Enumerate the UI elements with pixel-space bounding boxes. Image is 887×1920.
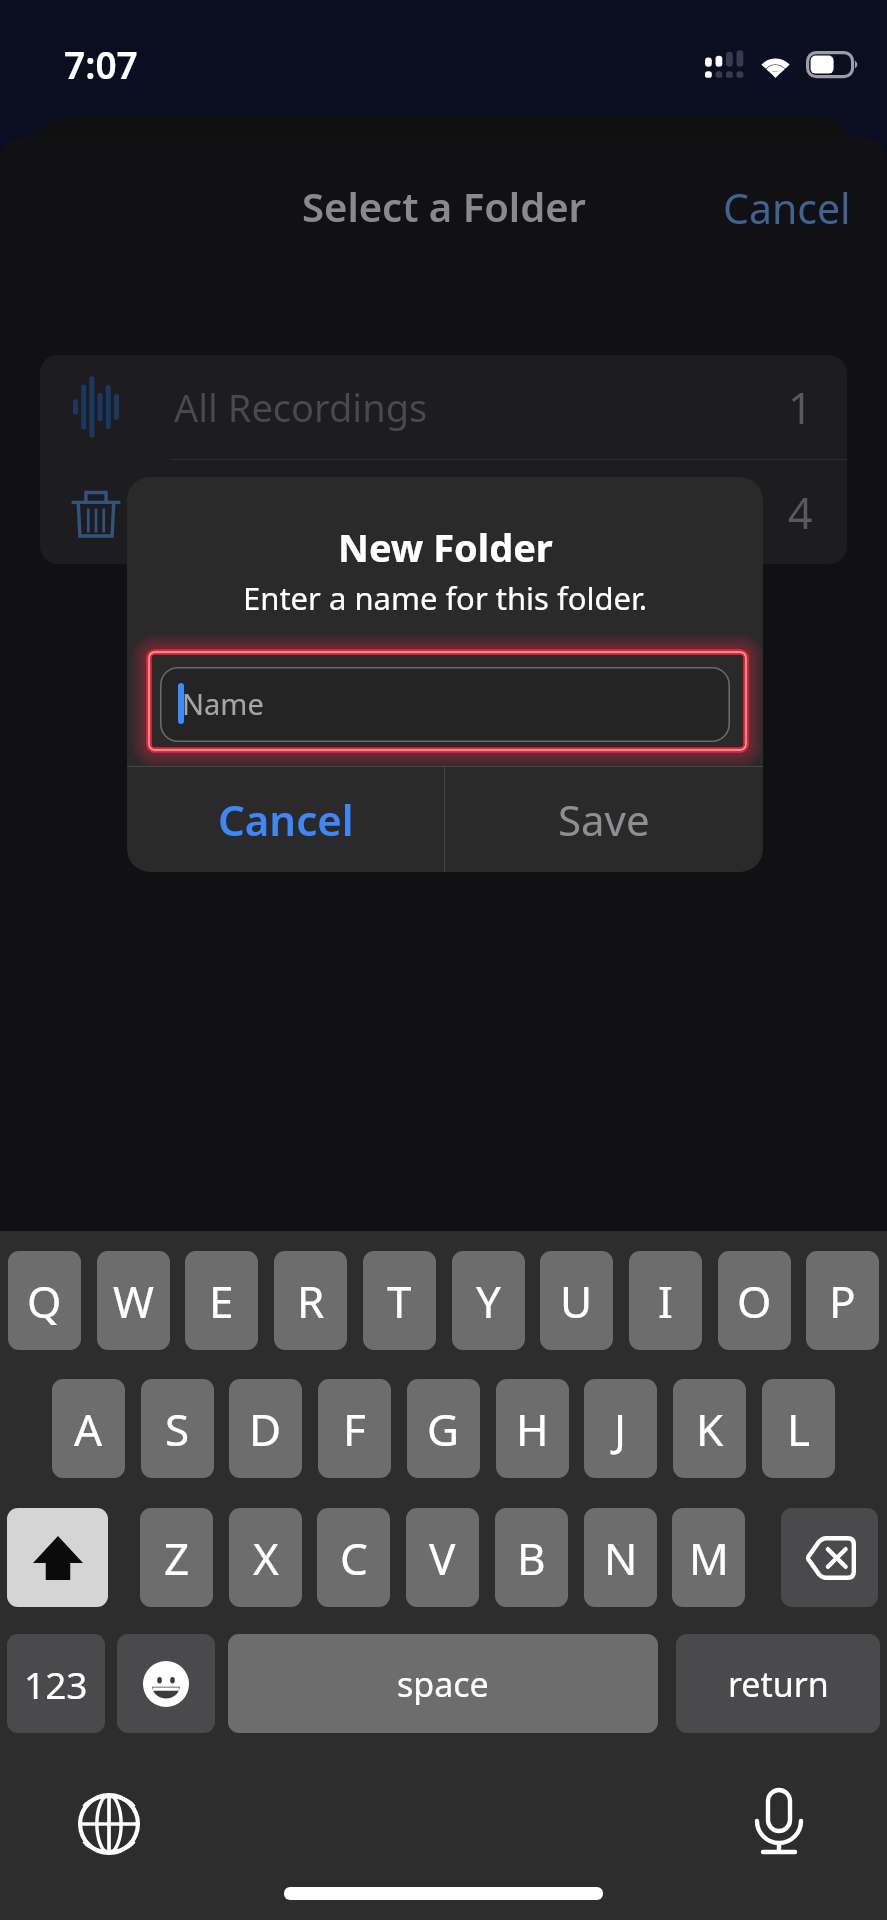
staticText: C: [340, 1528, 368, 1588]
staticText: O: [737, 1271, 772, 1331]
staticText: Cancel: [723, 180, 851, 236]
button[interactable]: S: [141, 1379, 214, 1478]
button[interactable]: V: [406, 1508, 479, 1607]
button[interactable]: L: [762, 1379, 835, 1478]
staticText: Enter a name for this folder.: [243, 577, 648, 619]
button[interactable]: Backspace: [781, 1508, 878, 1607]
staticText: D: [249, 1399, 282, 1459]
button[interactable]: R: [274, 1251, 347, 1350]
button[interactable]: C: [317, 1508, 390, 1607]
staticText: Y: [476, 1271, 501, 1331]
staticText: R: [297, 1271, 325, 1331]
button[interactable]: Q: [8, 1251, 81, 1350]
staticText: 4: [788, 483, 813, 542]
button[interactable]: K: [673, 1379, 746, 1478]
button[interactable]: Y: [452, 1251, 525, 1350]
staticText: Save: [558, 791, 650, 848]
staticText: P: [829, 1271, 856, 1331]
button[interactable]: Cancel: [127, 767, 444, 872]
staticText: T: [387, 1271, 412, 1331]
staticText: 1: [788, 378, 813, 437]
button[interactable]: W: [97, 1251, 170, 1350]
staticText: K: [696, 1399, 724, 1459]
button[interactable]: J: [584, 1379, 657, 1478]
staticText: Z: [164, 1528, 190, 1588]
button[interactable]: B: [495, 1508, 568, 1607]
staticText: H: [516, 1399, 549, 1459]
staticText: Name: [182, 684, 264, 723]
button[interactable]: Shift: [7, 1508, 108, 1607]
button[interactable]: Dictation: [745, 1787, 813, 1855]
staticText: 123: [24, 1659, 88, 1709]
button[interactable]: F: [318, 1379, 391, 1478]
button[interactable]: D: [229, 1379, 302, 1478]
button[interactable]: M: [672, 1508, 745, 1607]
button[interactable]: U: [540, 1251, 613, 1350]
staticText: New Folder: [338, 521, 553, 573]
staticText: Q: [27, 1271, 62, 1331]
button[interactable]: Change keyboard: [75, 1790, 143, 1858]
staticText: Cancel: [218, 791, 354, 848]
button[interactable]: A: [52, 1379, 125, 1478]
button[interactable]: N: [584, 1508, 657, 1607]
staticText: All Recordings: [174, 381, 428, 433]
button[interactable]: H: [496, 1379, 569, 1478]
button[interactable]: Recently Deleted: [40, 460, 847, 564]
button[interactable]: I: [629, 1251, 702, 1350]
staticText: J: [614, 1399, 627, 1459]
staticText: return: [728, 1661, 829, 1707]
button[interactable]: Save: [445, 767, 763, 872]
staticText: V: [429, 1528, 456, 1588]
staticText: G: [427, 1399, 460, 1459]
button[interactable]: All Recordings: [40, 355, 847, 459]
staticText: L: [787, 1399, 811, 1459]
button[interactable]: O: [718, 1251, 791, 1350]
staticText: F: [343, 1399, 366, 1459]
button[interactable]: E: [185, 1251, 258, 1350]
staticText: space: [397, 1661, 489, 1707]
button[interactable]: Cancel: [711, 170, 863, 246]
button[interactable]: T: [363, 1251, 436, 1350]
staticText: Select a Folder: [302, 179, 586, 233]
button[interactable]: Emoji: [117, 1634, 215, 1733]
button[interactable]: Z: [140, 1508, 213, 1607]
button[interactable]: X: [229, 1508, 302, 1607]
button[interactable]: 123: [7, 1634, 105, 1733]
staticText: E: [209, 1271, 234, 1331]
staticText: W: [113, 1271, 154, 1331]
staticText: S: [165, 1399, 190, 1459]
staticText: 7:07: [64, 39, 138, 89]
staticText: I: [658, 1271, 673, 1331]
staticText: U: [560, 1271, 593, 1331]
staticText: M: [689, 1528, 729, 1588]
staticText: X: [253, 1528, 279, 1588]
staticText: N: [604, 1528, 638, 1588]
staticText: A: [74, 1399, 103, 1459]
button[interactable]: return: [676, 1634, 880, 1733]
button[interactable]: space: [228, 1634, 658, 1733]
staticText: B: [517, 1528, 546, 1588]
button[interactable]: P: [806, 1251, 879, 1350]
button[interactable]: G: [407, 1379, 480, 1478]
staticText: Recently Deleted: [174, 486, 474, 538]
